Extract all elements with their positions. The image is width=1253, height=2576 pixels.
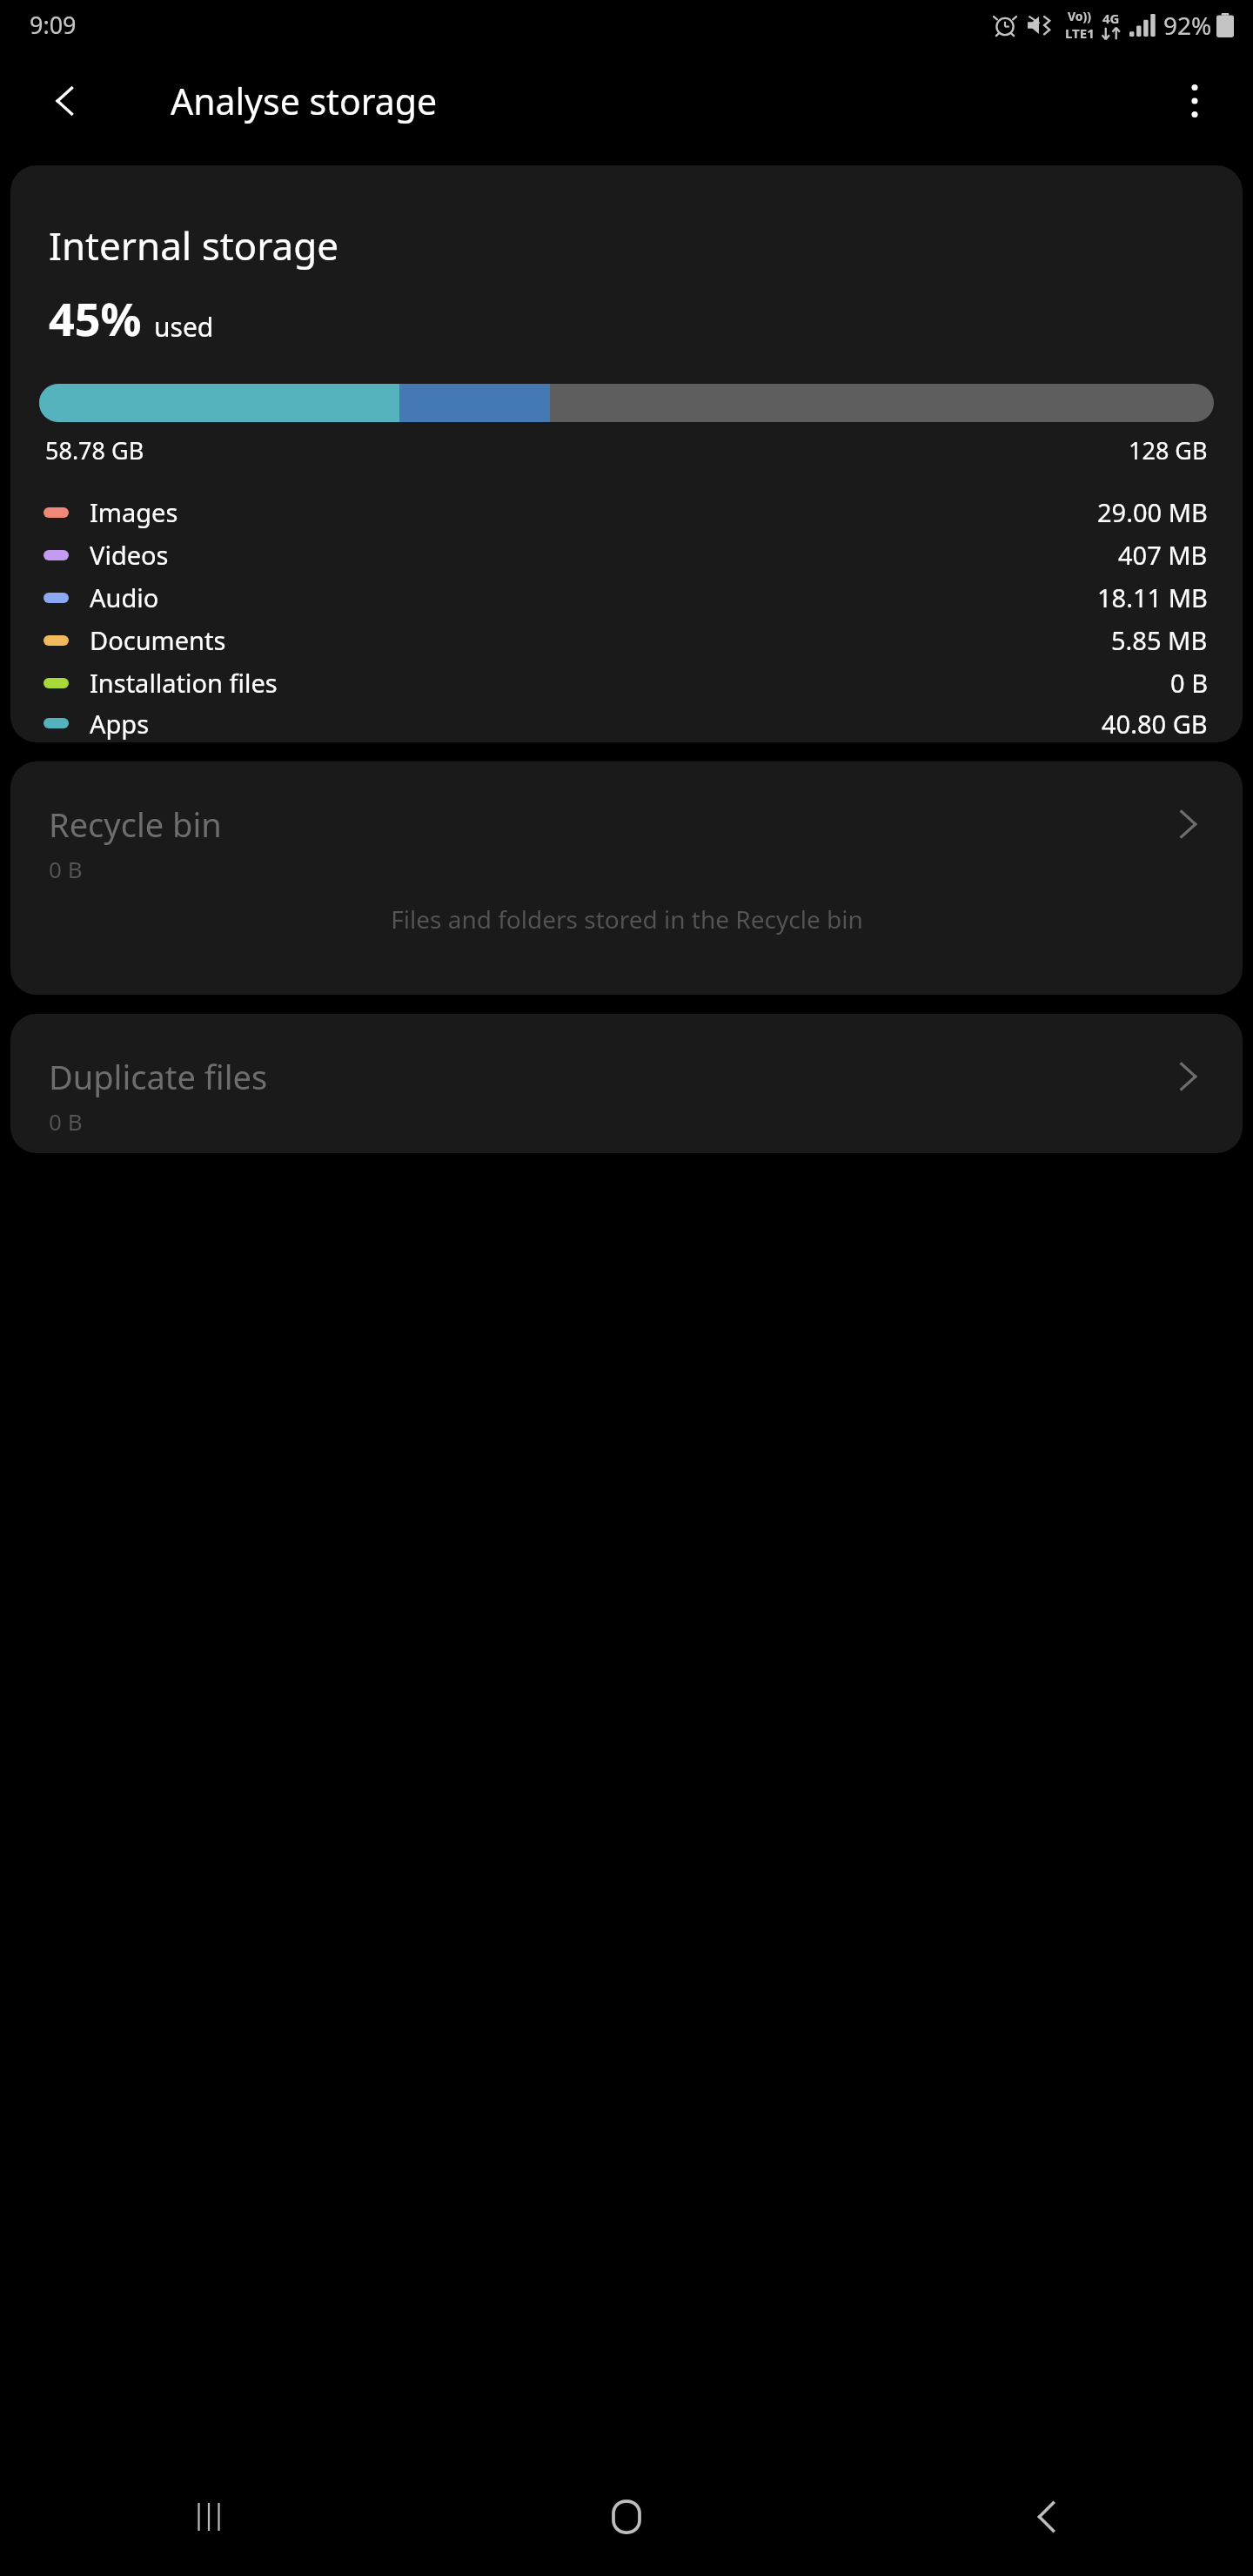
button[interactable]: Audio [10, 576, 1243, 619]
button[interactable]: More options [1163, 69, 1227, 133]
button[interactable]: Installation files [10, 661, 1243, 704]
staticText: Images [90, 495, 178, 529]
staticText: Recycle bin [49, 802, 222, 847]
staticText: 4G [1102, 10, 1120, 27]
staticText: used [154, 309, 214, 345]
staticText: Audio [90, 580, 159, 614]
staticText: Duplicate files [49, 1054, 268, 1099]
button[interactable]: Videos [10, 533, 1243, 576]
button[interactable]: Recycle bin [10, 761, 1243, 995]
button[interactable]: Documents [10, 619, 1243, 661]
staticText: 29.00 MB [1097, 495, 1208, 529]
staticText: 5.85 MB [1111, 623, 1208, 657]
staticText: 18.11 MB [1097, 580, 1208, 614]
staticText: 45% [49, 287, 142, 349]
button[interactable]: Recent apps [167, 2475, 251, 2559]
staticText: 0 B [49, 1106, 83, 1137]
button[interactable]: Back [1002, 2475, 1086, 2559]
staticText: Internal storage [49, 219, 339, 272]
staticText: 0 B [1170, 666, 1208, 700]
button[interactable]: Back [37, 74, 90, 128]
staticText: LTE1 [1065, 24, 1095, 42]
staticText: 40.80 GB [1102, 707, 1208, 741]
staticText: Files and folders stored in the Recycle … [391, 902, 863, 936]
staticText: 407 MB [1118, 538, 1208, 572]
button[interactable]: Apps [10, 704, 1243, 742]
staticText: Documents [90, 623, 226, 657]
staticText: 128 GB [1129, 434, 1208, 466]
staticText: Videos [90, 538, 169, 572]
staticText: 58.78 GB [45, 434, 144, 466]
button[interactable]: Duplicate files [10, 1014, 1243, 1153]
staticText: 0 B [49, 854, 83, 884]
staticText: 92% [1163, 9, 1212, 42]
staticText: Apps [90, 707, 150, 741]
staticText: Installation files [90, 666, 278, 700]
button[interactable]: Images [10, 491, 1243, 533]
button[interactable]: Home [585, 2475, 668, 2559]
staticText: Vo)) [1068, 8, 1092, 24]
staticText: Analyse storage [171, 77, 438, 125]
staticText: 9:09 [30, 9, 77, 41]
